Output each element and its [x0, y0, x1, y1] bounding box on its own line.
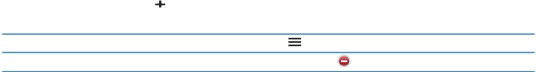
button[interactable]: Menu — [282, 33, 300, 51]
button[interactable]: Block — [336, 54, 352, 70]
button[interactable]: Add — [150, 0, 168, 18]
